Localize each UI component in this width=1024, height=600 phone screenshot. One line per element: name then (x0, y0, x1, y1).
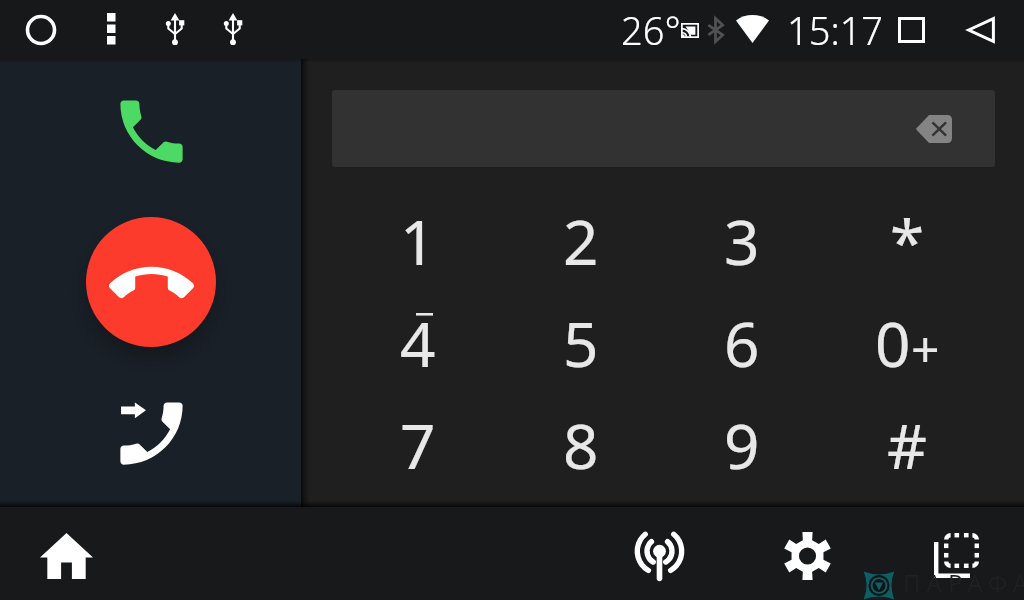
staticText: 1 (400, 199, 436, 283)
staticText: + (911, 314, 940, 382)
staticText: ПАРАФАР (903, 566, 1024, 599)
button[interactable]: Recents (884, 8, 938, 52)
button[interactable]: 6 (662, 293, 822, 393)
button[interactable]: 7 (338, 395, 498, 495)
staticText: 6 (724, 301, 760, 385)
button[interactable]: 1 (338, 191, 498, 291)
staticText: # (887, 403, 928, 487)
staticText: 3 (724, 199, 760, 283)
staticText: 7 (400, 403, 436, 487)
button[interactable]: 0 (827, 293, 987, 393)
button[interactable]: Backspace (906, 102, 960, 156)
button[interactable]: 2 (501, 191, 661, 291)
button[interactable]: 4 (338, 293, 498, 393)
staticText: * (890, 199, 925, 283)
button[interactable]: Home circle (17, 6, 65, 54)
button[interactable]: Back (954, 8, 1008, 52)
staticText: 4 (400, 301, 436, 385)
button[interactable]: Apps (906, 507, 1006, 600)
button[interactable]: 9 (662, 395, 822, 495)
button[interactable]: 8 (501, 395, 661, 495)
staticText: 2 (563, 199, 599, 283)
staticText: 8 (563, 403, 599, 487)
button[interactable]: Radio (609, 507, 709, 600)
button[interactable]: 5 (501, 293, 661, 393)
button[interactable]: End call (86, 217, 216, 347)
button[interactable]: * (827, 191, 987, 291)
staticText: 26° (621, 4, 681, 56)
staticText: 5 (563, 301, 599, 385)
button[interactable]: Forward call (103, 385, 199, 481)
button[interactable]: Settings (757, 507, 857, 600)
button[interactable]: 3 (662, 191, 822, 291)
button[interactable]: # (827, 395, 987, 495)
staticText: 0 (875, 301, 911, 385)
staticText: 9 (724, 403, 760, 487)
staticText: 15:17 (787, 4, 884, 56)
button[interactable]: Home (16, 507, 116, 600)
button[interactable]: More options (89, 6, 133, 50)
button[interactable]: Call (103, 83, 199, 179)
